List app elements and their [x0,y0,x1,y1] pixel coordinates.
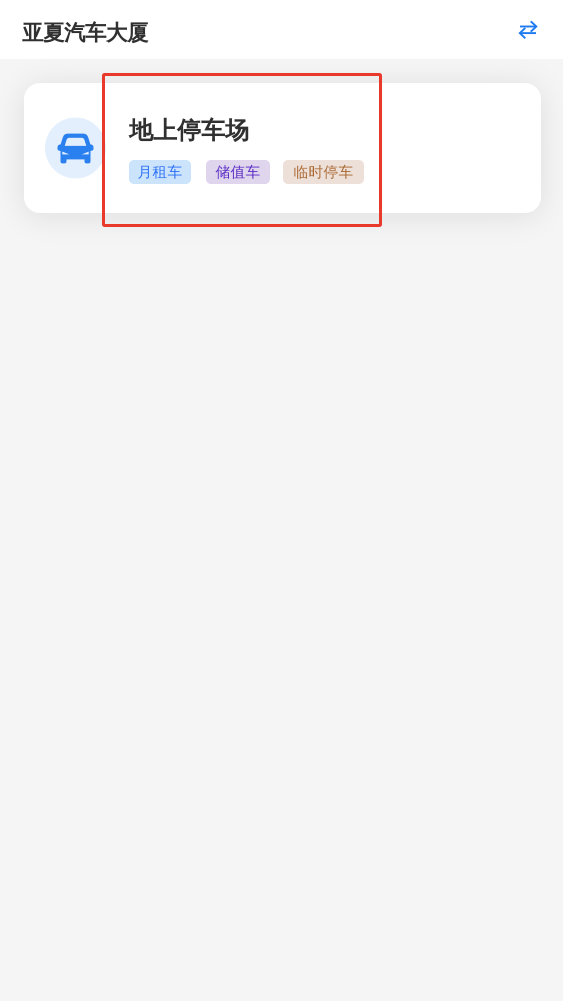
staticText: 临时停车 [293,163,353,181]
staticText: 亚夏汽车大厦 [22,20,148,46]
staticText: 储值车 [215,163,260,181]
button[interactable]: 地上停车场 [24,83,541,213]
button[interactable]: Switch parking lot [510,11,546,47]
staticText: 月租车 [137,163,182,181]
staticText: 地上停车场 [129,116,249,145]
